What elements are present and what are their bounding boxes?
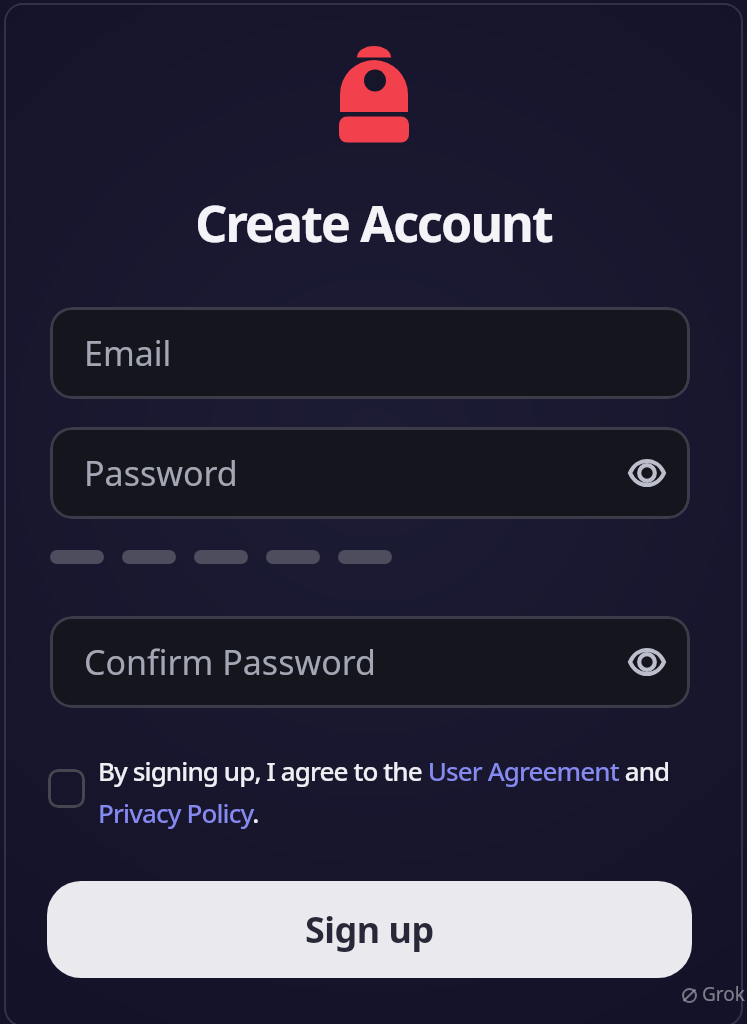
staticText: Sign up [305,905,434,954]
staticText: Password [84,450,238,496]
button[interactable]: By signing up, I agree to the User Agree… [98,753,738,831]
button[interactable]: Confirm Password [50,616,690,708]
staticText: Grok [702,981,745,1007]
staticText: Confirm Password [84,639,376,685]
staticText: Create Account [0,189,747,257]
button[interactable]: Password [50,427,690,519]
staticText: Email [84,330,172,376]
button[interactable] [48,769,85,808]
button[interactable]: Email [50,307,690,399]
button[interactable]: Sign up [47,881,692,978]
